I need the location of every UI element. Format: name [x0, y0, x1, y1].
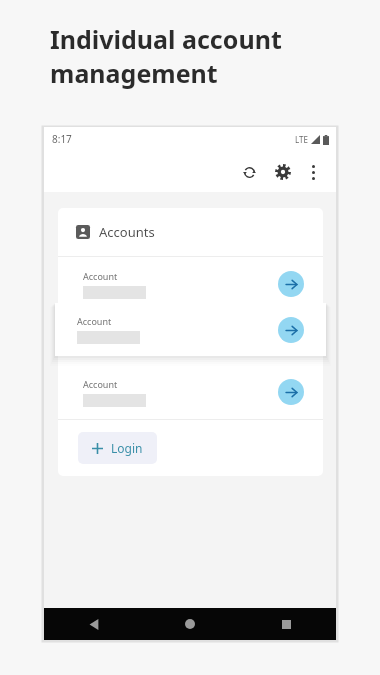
staticText: Account	[83, 378, 118, 390]
button[interactable]: More options	[300, 159, 326, 185]
button[interactable]: Login	[78, 432, 157, 464]
staticText: Individual account	[50, 22, 282, 56]
button[interactable]: Back	[80, 610, 108, 638]
button[interactable]: Account	[55, 303, 326, 356]
button[interactable]: Recent apps	[272, 610, 300, 638]
staticText: 8:17	[52, 132, 72, 146]
staticText: management	[50, 56, 218, 90]
button[interactable]: Settings	[268, 157, 298, 187]
button[interactable]: Open account	[278, 379, 304, 405]
staticText: Account	[77, 315, 112, 327]
staticText: Account	[83, 270, 118, 282]
button[interactable]: Open account	[278, 271, 304, 297]
button[interactable]: Refresh	[234, 157, 264, 187]
button[interactable]: Account	[58, 257, 323, 311]
button[interactable]: Open account	[278, 317, 304, 343]
button[interactable]: Home	[176, 610, 204, 638]
staticText: LTE	[295, 134, 308, 145]
staticText: Login	[111, 440, 143, 456]
staticText: Accounts	[99, 223, 155, 241]
button[interactable]: Account	[58, 365, 323, 419]
